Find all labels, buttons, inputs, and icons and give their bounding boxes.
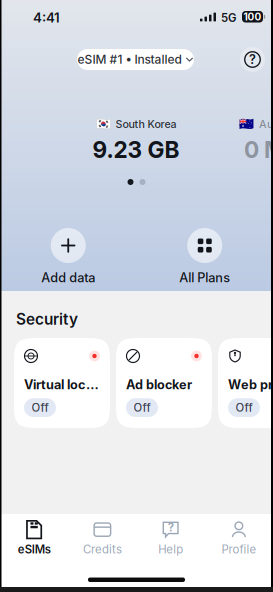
button[interactable]: ? bbox=[136, 517, 205, 559]
staticText: eSIMs bbox=[18, 543, 51, 556]
staticText: Add data bbox=[41, 270, 95, 285]
button[interactable]: eSIMs bbox=[0, 517, 68, 559]
staticText: Ad blocker bbox=[126, 377, 192, 392]
button[interactable]: Virtual location bbox=[14, 338, 110, 428]
staticText: Off bbox=[133, 401, 150, 414]
staticText: 5G bbox=[221, 11, 236, 25]
staticText: Security bbox=[16, 310, 78, 329]
staticText: Help bbox=[158, 543, 183, 556]
staticText: South Korea bbox=[115, 118, 176, 130]
staticText: Australia bbox=[259, 118, 273, 130]
staticText: Credits bbox=[83, 543, 122, 556]
button[interactable]: Profile bbox=[205, 517, 273, 559]
button[interactable]: Add data bbox=[0, 228, 136, 285]
staticText: Virtual location bbox=[24, 377, 100, 392]
staticText: 🇦🇺 bbox=[239, 117, 254, 131]
staticText: 9.23 GB bbox=[92, 136, 179, 163]
staticText: eSIM #1 • Installed bbox=[78, 52, 182, 67]
staticText: ? bbox=[249, 52, 256, 67]
button[interactable]: eSIM #1 • Installed bbox=[77, 49, 194, 70]
staticText: All Plans bbox=[179, 270, 230, 285]
staticText: Web protection bbox=[228, 377, 273, 392]
button[interactable]: Ad blocker bbox=[116, 338, 212, 428]
staticText: Off bbox=[235, 401, 252, 414]
staticText: Profile bbox=[221, 543, 256, 556]
button[interactable]: Credits bbox=[68, 517, 136, 559]
staticText: ? bbox=[168, 520, 174, 534]
staticText: Off bbox=[31, 401, 48, 414]
staticText: 🇰🇷 bbox=[95, 117, 110, 131]
button[interactable]: All Plans bbox=[136, 228, 273, 285]
staticText: 100 bbox=[243, 11, 261, 23]
staticText: 0 MB bbox=[244, 136, 273, 163]
button[interactable]: Help bbox=[240, 47, 265, 72]
staticText: 4:41 bbox=[33, 9, 60, 26]
button[interactable]: Web protection bbox=[218, 338, 273, 428]
